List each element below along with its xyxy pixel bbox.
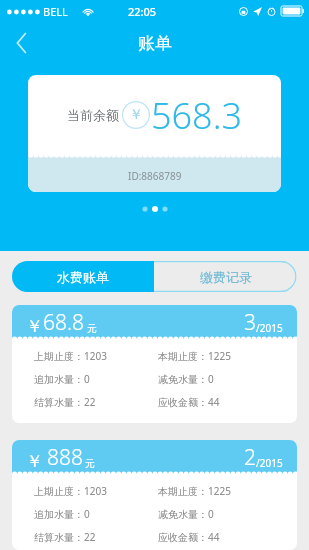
button[interactable]: ￥ xyxy=(12,305,297,423)
staticText: 减免水量：0 xyxy=(158,372,283,386)
staticText: 结算水量：22 xyxy=(34,395,158,409)
button[interactable]: 缴费记录 xyxy=(154,261,297,292)
staticText: 68.8 xyxy=(43,308,85,337)
staticText: 结算水量：22 xyxy=(34,530,158,544)
staticText: ￥ xyxy=(129,106,143,124)
button[interactable]: Back xyxy=(4,25,40,61)
staticText: 本期止度：1225 xyxy=(158,484,283,498)
button[interactable]: ID:8868789 xyxy=(28,75,281,192)
button[interactable]: 水费账单 xyxy=(12,261,154,292)
staticText: 账单 xyxy=(138,33,172,54)
staticText: 本期止度：1225 xyxy=(158,349,283,363)
staticText: /2015 xyxy=(256,321,283,335)
staticText: ￥ xyxy=(26,451,43,472)
staticText: 2 xyxy=(244,443,256,472)
staticText: 888 xyxy=(47,443,83,472)
staticText: 上期止度：1203 xyxy=(34,349,158,363)
staticText: 22:05 xyxy=(128,4,157,19)
staticText: 元 xyxy=(87,322,97,335)
button[interactable]: ￥ xyxy=(12,440,297,550)
staticText: ID:8868789 xyxy=(128,169,182,183)
staticText: 缴费记录 xyxy=(200,269,252,285)
staticText: 3 xyxy=(244,308,256,337)
staticText: 减免水量：0 xyxy=(158,507,283,521)
staticText: 元 xyxy=(85,457,95,470)
staticText: 568.3 xyxy=(151,91,243,140)
staticText: /2015 xyxy=(256,456,283,470)
staticText: 应收金额：44 xyxy=(158,530,283,544)
staticText: BELL xyxy=(43,4,68,19)
staticText: 当前余额 xyxy=(67,107,119,123)
staticText: 上期止度：1203 xyxy=(34,484,158,498)
staticText: 追加水量：0 xyxy=(34,372,158,386)
staticText: 水费账单 xyxy=(57,269,109,285)
staticText: 应收金额：44 xyxy=(158,395,283,409)
staticText: ￥ xyxy=(26,316,43,337)
staticText: 追加水量：0 xyxy=(34,507,158,521)
